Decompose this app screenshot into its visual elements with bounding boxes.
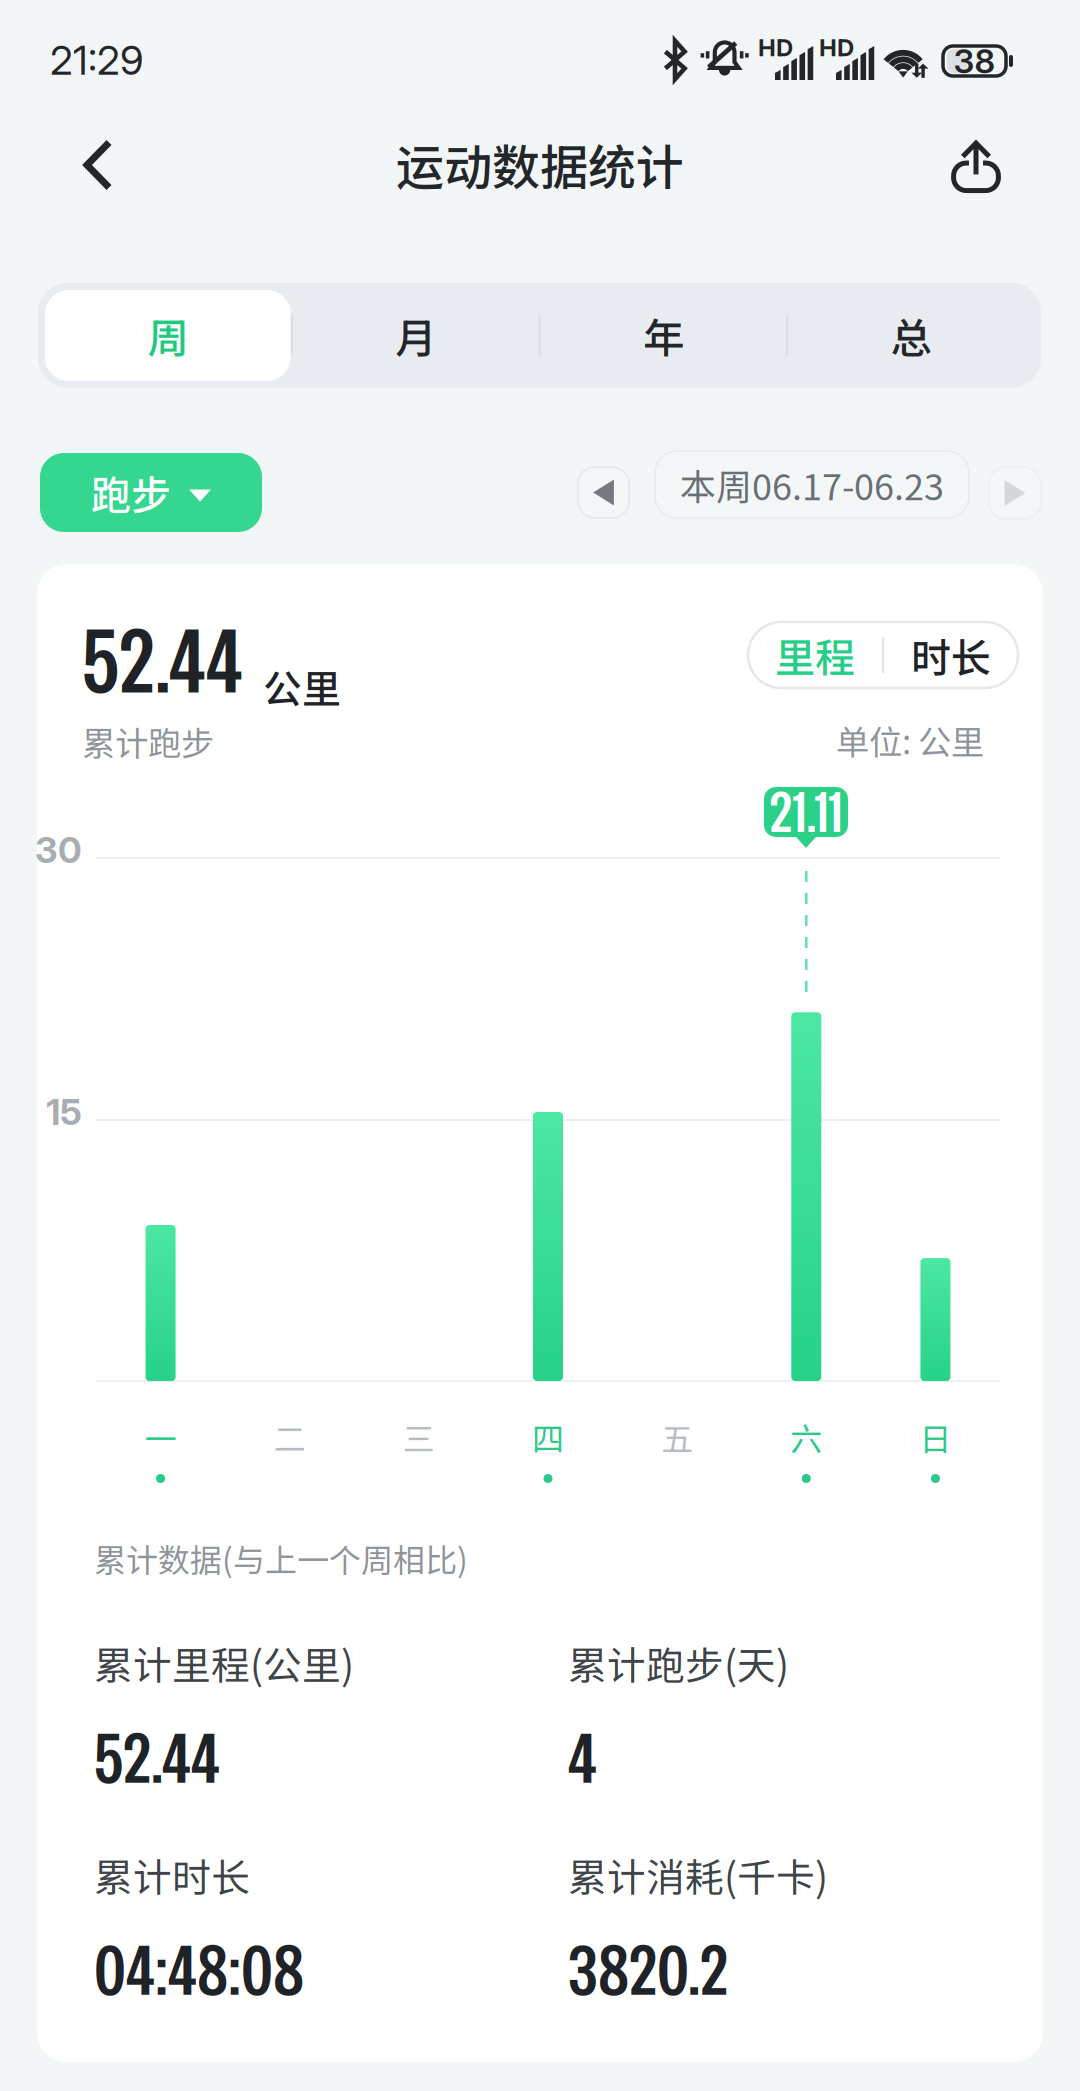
staticText: 一 [145,1414,177,1460]
staticText: 周 [147,306,188,365]
staticText: 52.44 [82,604,243,718]
staticText: 时长 [911,626,991,684]
staticText: 21.11 [769,776,842,848]
staticText: 本周06.17-06.23 [680,458,944,510]
staticText: 15 [46,1090,82,1134]
staticText: 04:48:08 [94,1925,304,2015]
staticText: HD [758,33,793,62]
staticText: 日 [919,1414,951,1460]
staticText: 年 [643,306,684,365]
button[interactable]: Next week [989,467,1041,519]
staticText: 跑步 [91,463,171,521]
button[interactable]: 跑步 [40,453,262,532]
staticText: HD [819,33,854,62]
button[interactable]: 月 [293,290,539,381]
button[interactable]: 年 [540,290,786,381]
staticText: 运动数据统计 [396,129,684,199]
staticText: 六 [790,1414,822,1460]
staticText: 21:29 [50,36,144,84]
staticText: 里程 [775,626,855,684]
staticText: 单位: 公里 [836,716,984,764]
staticText: 3820.2 [568,1925,728,2015]
staticText: 累计时长 [94,1847,250,1903]
staticText: 四 [532,1414,564,1460]
button[interactable]: Previous week [578,467,629,518]
staticText: 38 [953,41,995,81]
staticText: 4 [568,1713,597,1803]
staticText: 累计里程(公里) [94,1635,354,1691]
staticText: 总 [891,306,932,365]
staticText: 二 [274,1414,306,1460]
button[interactable]: 时长 [884,622,1018,688]
staticText: 52.44 [94,1713,220,1803]
staticText: 累计数据(与上一个周相比) [94,1535,468,1581]
button[interactable]: Back [52,119,144,211]
button[interactable]: 周 [45,290,291,381]
staticText: 累计跑步 [82,717,214,765]
staticText: 五 [661,1414,693,1460]
staticText: 三 [403,1414,435,1460]
button[interactable]: 里程 [748,622,882,688]
staticText: 累计消耗(千卡) [568,1847,828,1903]
staticText: 月 [395,306,436,365]
button[interactable]: 总 [788,290,1034,381]
staticText: 公里 [263,658,341,714]
staticText: 累计跑步(天) [568,1635,789,1691]
button[interactable]: Share [930,120,1022,212]
staticText: 30 [35,828,82,872]
